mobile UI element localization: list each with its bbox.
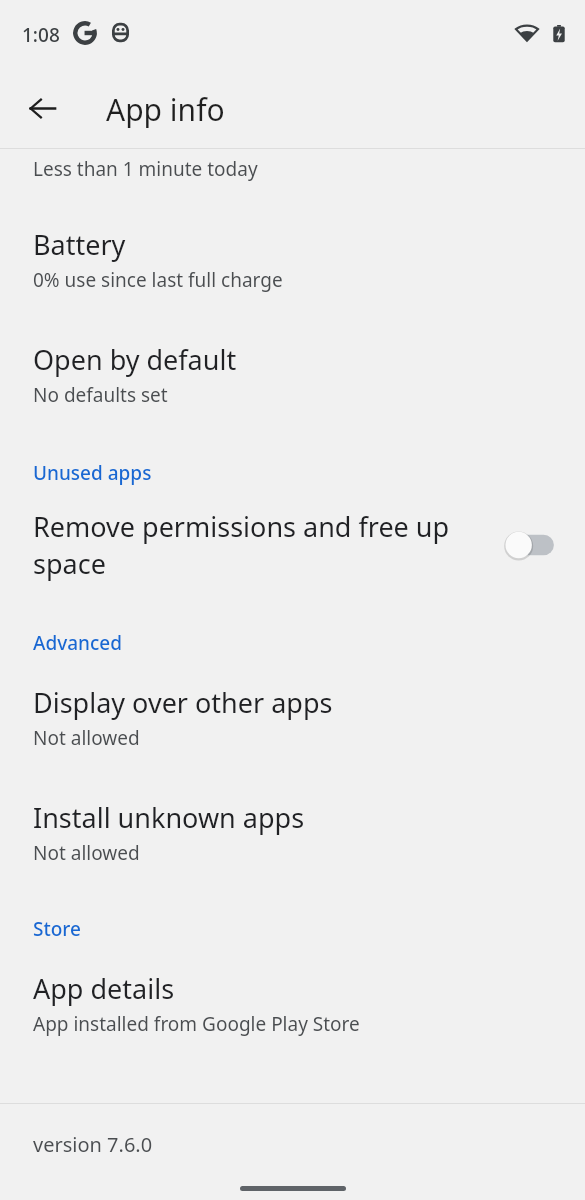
staticText: No defaults set (33, 382, 168, 408)
staticText: Less than 1 minute today (33, 156, 258, 182)
button[interactable]: App details (0, 942, 585, 1037)
button[interactable]: Display over other apps (0, 656, 585, 751)
staticText: Store (33, 916, 81, 942)
staticText: 1:08 (22, 22, 60, 48)
staticText: Remove permissions and free up space (33, 508, 483, 582)
staticText: Not allowed (33, 840, 140, 866)
staticText: App installed from Google Play Store (33, 1011, 360, 1037)
staticText: Advanced (33, 630, 123, 656)
button[interactable]: Remove permissions and free up space (0, 486, 585, 582)
staticText: 0% use since last full charge (33, 267, 283, 293)
staticText: App details (33, 970, 175, 1007)
button[interactable]: Back (18, 84, 66, 132)
staticText: Unused apps (33, 460, 152, 486)
staticText: version 7.6.0 (33, 1131, 153, 1158)
button[interactable]: Install unknown apps (0, 751, 585, 866)
staticText: Install unknown apps (33, 799, 305, 836)
staticText: Open by default (33, 341, 237, 378)
button[interactable]: Open by default (0, 293, 585, 408)
staticText: Battery (33, 226, 126, 263)
button[interactable]: Battery (0, 182, 585, 293)
staticText: Display over other apps (33, 684, 333, 721)
button[interactable]: Remove permissions and free up space tog… (499, 523, 561, 567)
staticText: Not allowed (33, 725, 140, 751)
staticText: App info (106, 89, 225, 130)
